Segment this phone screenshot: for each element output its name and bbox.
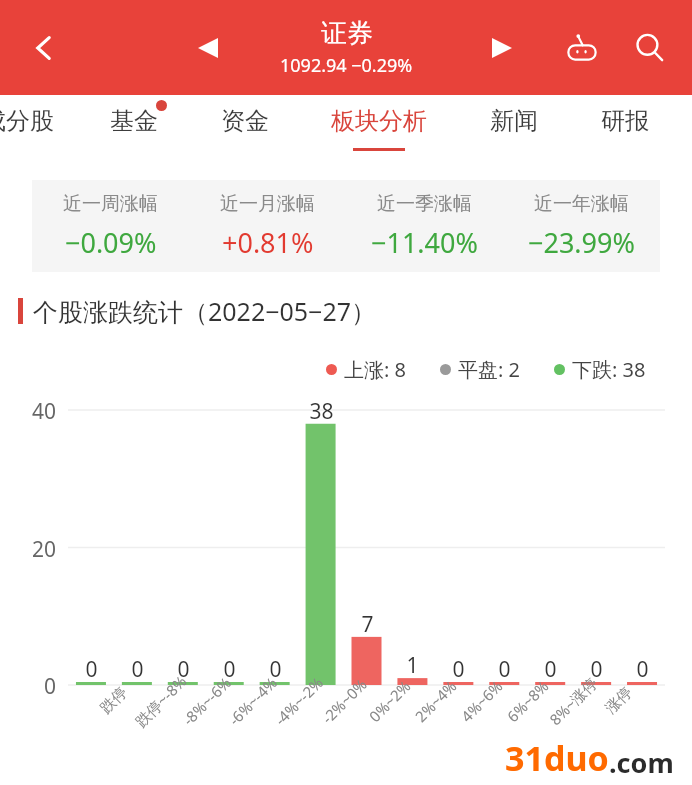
staticText: 证券 xyxy=(321,17,373,50)
button[interactable]: Next xyxy=(480,26,524,70)
staticText: 0 xyxy=(498,655,511,684)
staticText: -6%~-4% xyxy=(224,672,281,730)
staticText: 涨停 xyxy=(602,683,636,718)
staticText: 近一周涨幅 xyxy=(63,192,158,216)
button[interactable]: 下跌: 38 xyxy=(554,356,646,383)
staticText: +0.81% xyxy=(222,224,314,261)
staticText: 38 xyxy=(309,397,334,426)
staticText: 31duo xyxy=(505,735,609,781)
button[interactable]: 基金 xyxy=(96,95,172,170)
staticText: -4%~-2% xyxy=(270,672,327,730)
staticText: 20 xyxy=(31,535,56,564)
staticText: 跌停~-8% xyxy=(130,671,190,731)
staticText: 近一年涨幅 xyxy=(534,192,629,216)
button[interactable]: 研报 xyxy=(587,95,663,170)
button[interactable]: Back xyxy=(22,26,66,70)
staticText: −11.40% xyxy=(371,224,478,261)
staticText: 跌停 xyxy=(97,683,131,718)
staticText: 6%~8% xyxy=(502,676,553,726)
staticText: 0 xyxy=(636,655,649,684)
staticText: 0 xyxy=(131,655,144,684)
staticText: -2%~0% xyxy=(317,674,371,728)
staticText: 0 xyxy=(590,655,603,684)
staticText: 近一月涨幅 xyxy=(220,192,315,216)
button[interactable]: 上涨: 8 xyxy=(326,356,406,383)
staticText: 上涨: 8 xyxy=(344,356,406,383)
staticText: 0 xyxy=(544,655,557,684)
staticText: 2%~4% xyxy=(410,676,461,726)
staticText: 0 xyxy=(85,655,98,684)
staticText: 近一季涨幅 xyxy=(377,192,472,216)
staticText: 0 xyxy=(43,672,56,701)
button[interactable]: 成分股 xyxy=(0,95,56,170)
staticText: 0%~2% xyxy=(364,676,415,726)
staticText: 40 xyxy=(31,397,56,426)
staticText: 下跌: 38 xyxy=(572,356,646,383)
staticText: 0 xyxy=(177,655,190,684)
staticText: 1 xyxy=(406,651,419,680)
staticText: 板块分析 xyxy=(331,106,427,136)
button[interactable]: Previous xyxy=(186,26,230,70)
button[interactable]: 证券 xyxy=(280,17,413,78)
staticText: −0.09% xyxy=(65,224,157,261)
staticText: −23.99% xyxy=(528,224,635,261)
button[interactable]: Assistant xyxy=(558,24,606,72)
button[interactable]: Search xyxy=(626,24,674,72)
staticText: 0 xyxy=(452,655,465,684)
staticText: 7 xyxy=(361,610,374,639)
button[interactable]: 新闻 xyxy=(476,95,552,170)
staticText: 个股涨跌统计（2022−05−27） xyxy=(33,294,377,328)
staticText: 4%~6% xyxy=(456,676,507,726)
staticText: 0 xyxy=(269,655,282,684)
staticText: 基金 xyxy=(110,106,158,136)
button[interactable]: 板块分析 xyxy=(329,95,429,170)
staticText: 1092.94 −0.29% xyxy=(280,53,413,78)
staticText: 8%~涨停 xyxy=(545,673,601,729)
staticText: .com xyxy=(609,744,674,781)
staticText: 成分股 xyxy=(0,106,54,136)
button[interactable]: 平盘: 2 xyxy=(440,356,520,383)
staticText: 0 xyxy=(223,655,236,684)
staticText: 资金 xyxy=(221,106,269,136)
staticText: 平盘: 2 xyxy=(458,356,520,383)
staticText: 研报 xyxy=(601,106,649,136)
staticText: 新闻 xyxy=(490,106,538,136)
button[interactable]: 资金 xyxy=(207,95,283,170)
staticText: -8%~-6% xyxy=(178,672,235,730)
